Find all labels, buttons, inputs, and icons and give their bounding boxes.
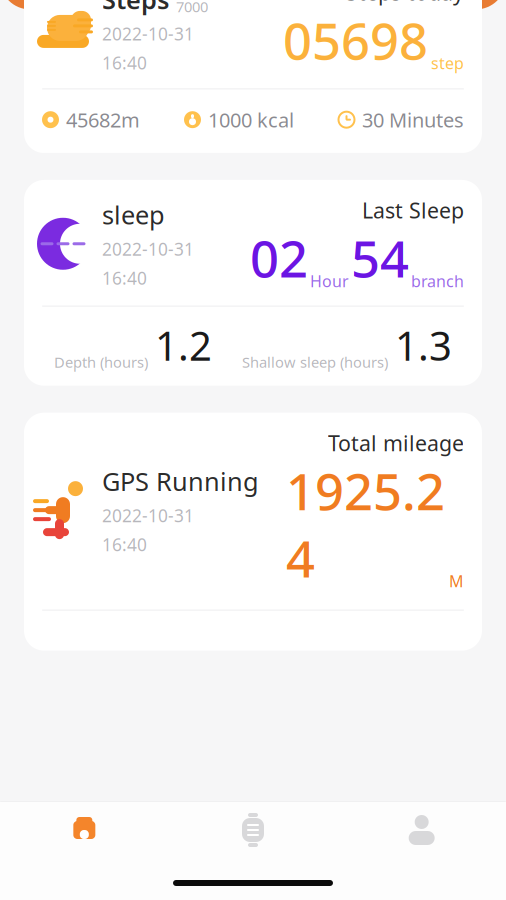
staticText: 54 — [351, 224, 409, 292]
staticText: 1000 kcal — [208, 106, 294, 133]
staticText: sleep — [102, 198, 165, 231]
button[interactable]: sleep — [24, 180, 482, 386]
staticText: Steps today — [346, 0, 464, 6]
staticText: 16:40 — [102, 533, 147, 556]
button[interactable]: Steps — [24, 0, 482, 153]
staticText: 2022-10-31 — [102, 504, 194, 527]
staticText: 1925.24 — [286, 457, 445, 592]
staticText: Shallow sleep (hours) — [242, 352, 388, 372]
staticText: 2022-10-31 — [102, 22, 194, 45]
button[interactable]: Device — [169, 802, 337, 858]
staticText: 30 Minutes — [362, 106, 464, 133]
staticText: 2022-10-31 — [102, 238, 194, 261]
staticText: 02 — [250, 224, 308, 292]
staticText: M — [449, 570, 464, 591]
staticText: GPS Running — [102, 464, 259, 498]
staticText: 1.2 — [155, 319, 212, 372]
staticText: Target Steps: 7000 — [176, 0, 264, 16]
staticText: 16:40 — [102, 51, 147, 74]
staticText: step — [431, 52, 464, 74]
staticText: Last Sleep — [362, 196, 464, 224]
button[interactable]: Home — [0, 802, 169, 858]
staticText: Steps — [102, 0, 169, 16]
button[interactable]: GPS Running — [24, 413, 482, 651]
staticText: branch — [411, 270, 464, 291]
staticText: 45682m — [66, 106, 140, 133]
staticText: Hour — [310, 270, 349, 291]
staticText: 1.3 — [395, 319, 452, 372]
staticText: 05698 — [283, 6, 428, 74]
staticText: 16:40 — [102, 267, 147, 290]
button[interactable]: Profile — [337, 802, 506, 858]
staticText: Depth (hours) — [54, 352, 148, 372]
staticText: Total mileage — [328, 429, 464, 457]
